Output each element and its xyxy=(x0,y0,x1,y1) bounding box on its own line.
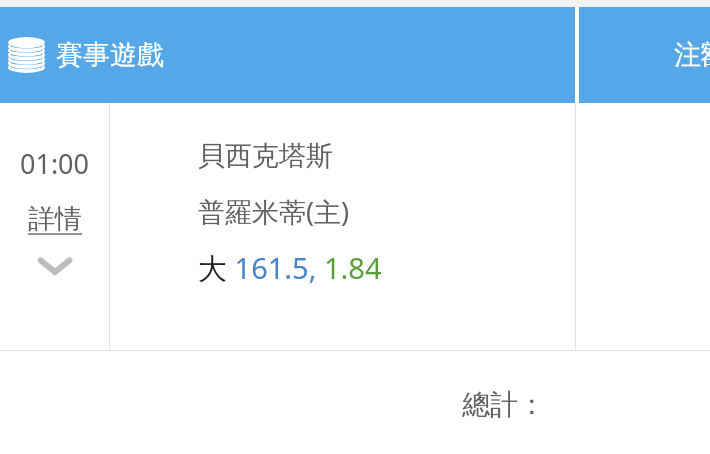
staticText: 總計： xyxy=(462,387,546,422)
button[interactable]: 賽事遊戲 xyxy=(0,7,575,103)
other: 賽事遊戲 xyxy=(8,37,45,73)
staticText: 01:00 xyxy=(20,145,90,182)
button[interactable]: 貝西克塔斯 xyxy=(110,103,575,350)
staticText: 賽事遊戲 xyxy=(56,38,164,72)
staticText: 大 161.5, 1.84 xyxy=(198,248,382,288)
button[interactable]: 注額 xyxy=(579,7,710,103)
staticText: 詳情 xyxy=(28,202,82,236)
staticText: 注額 xyxy=(674,38,710,72)
button[interactable]: 01:00 xyxy=(0,103,109,350)
staticText: 貝西克塔斯 xyxy=(198,139,333,173)
staticText: 普羅米蒂(主) xyxy=(198,193,350,230)
other: 展開 xyxy=(37,256,73,276)
